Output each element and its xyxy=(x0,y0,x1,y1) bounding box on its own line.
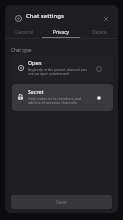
button[interactable]: Delete xyxy=(80,28,118,37)
staticText: Only visible to its members and admins o… xyxy=(28,96,82,106)
staticText: Secret xyxy=(28,88,44,95)
button[interactable]: Privacy xyxy=(42,28,80,37)
button[interactable]: Open xyxy=(12,55,113,82)
button[interactable]: Secret xyxy=(12,84,113,111)
staticText: Open xyxy=(28,59,42,66)
staticText: Chat settings xyxy=(26,12,64,20)
staticText: Anybody in the parent channel can see an… xyxy=(28,67,87,77)
staticText: Delete xyxy=(92,29,107,36)
staticText: General xyxy=(15,29,33,36)
button[interactable]: General xyxy=(5,28,42,37)
staticText: Chat type xyxy=(11,47,32,53)
button[interactable]: Save xyxy=(11,195,112,209)
button[interactable]: Close xyxy=(102,15,110,23)
staticText: Save xyxy=(56,199,67,206)
staticText: Privacy xyxy=(53,29,69,36)
